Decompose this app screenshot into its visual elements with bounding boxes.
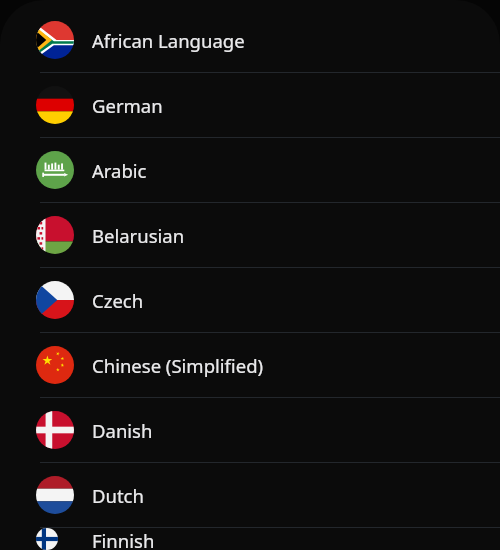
button[interactable]: Danish bbox=[0, 398, 500, 462]
button[interactable]: Belarusian bbox=[0, 203, 500, 267]
button[interactable]: Arabic bbox=[0, 138, 500, 202]
staticText: German bbox=[92, 93, 163, 118]
staticText: African Language bbox=[92, 28, 245, 53]
staticText: Chinese (Simplified) bbox=[92, 353, 264, 378]
button[interactable]: Dutch bbox=[0, 463, 500, 527]
staticText: Dutch bbox=[92, 483, 144, 508]
button[interactable]: Chinese (Simplified) bbox=[0, 333, 500, 397]
button[interactable]: Finnish bbox=[0, 528, 500, 550]
staticText: Czech bbox=[92, 288, 144, 313]
button[interactable]: Czech bbox=[0, 268, 500, 332]
staticText: Arabic bbox=[92, 158, 147, 183]
button[interactable]: African Language bbox=[0, 8, 500, 72]
staticText: Finnish bbox=[92, 528, 155, 550]
staticText: Belarusian bbox=[92, 223, 185, 248]
staticText: Danish bbox=[92, 418, 153, 443]
button[interactable]: German bbox=[0, 73, 500, 137]
